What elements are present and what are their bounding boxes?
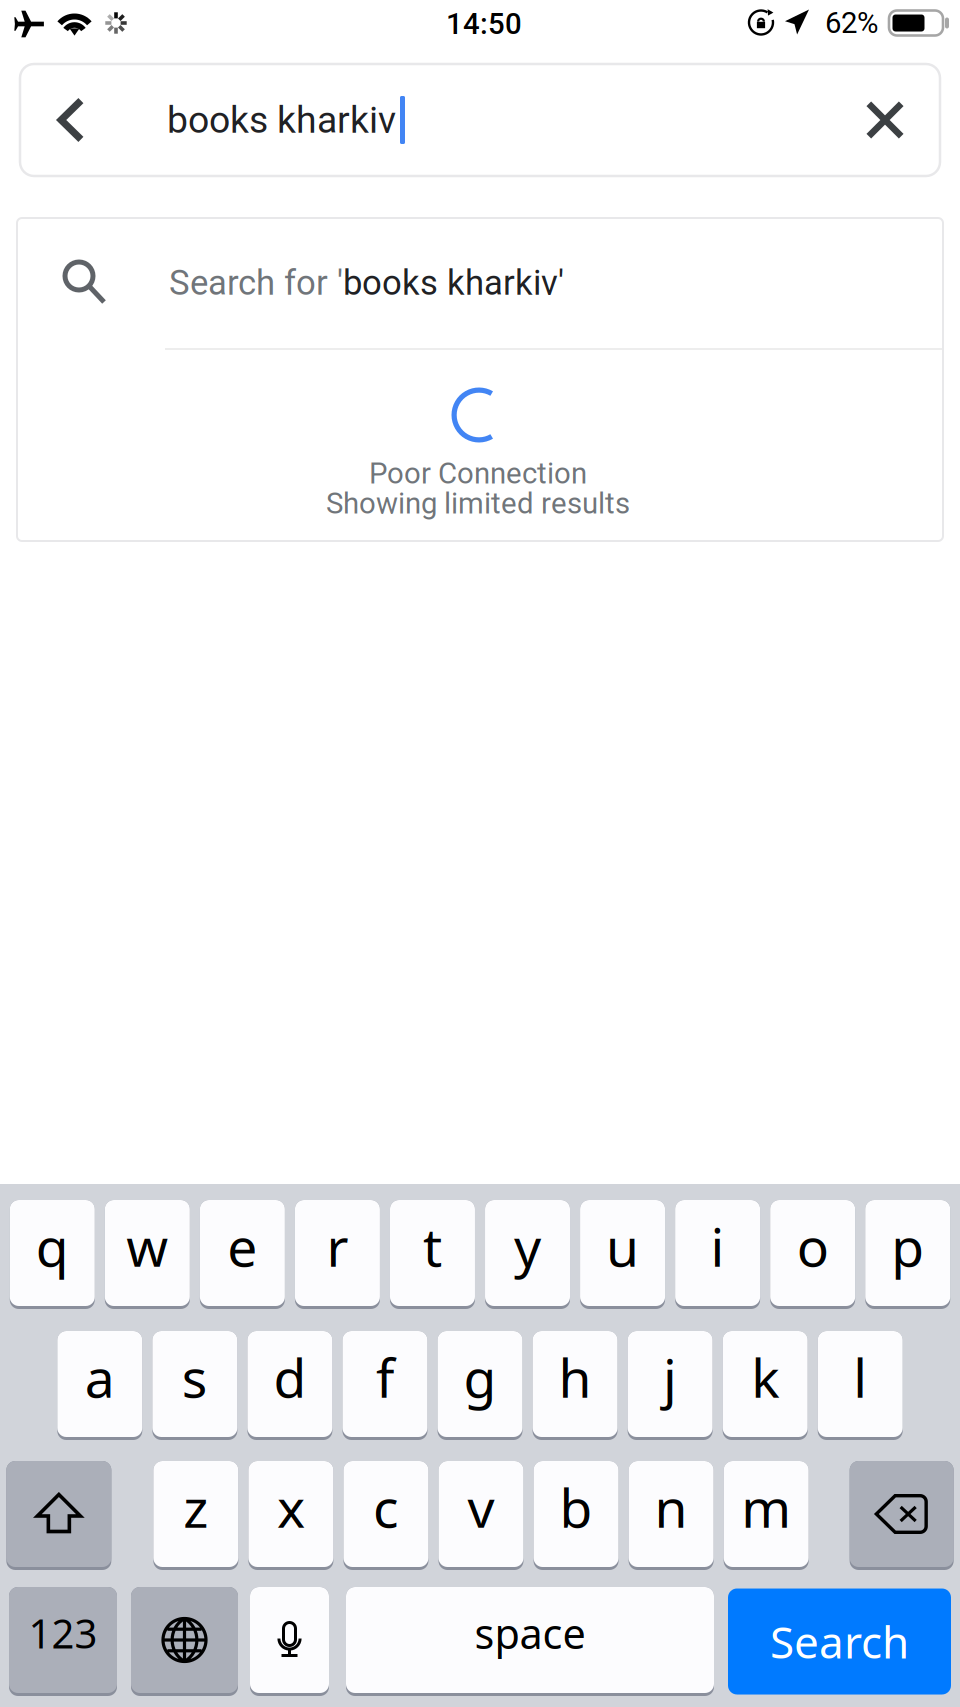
staticText: books kharkiv'	[343, 263, 564, 303]
staticText: d	[273, 1342, 306, 1412]
button[interactable]: f	[342, 1331, 427, 1440]
staticText: h	[558, 1342, 591, 1412]
button[interactable]: d	[247, 1331, 332, 1440]
button[interactable]: Clear	[831, 64, 939, 176]
button[interactable]: i	[675, 1200, 760, 1309]
button[interactable]: r	[295, 1200, 380, 1309]
staticText: r	[326, 1211, 348, 1281]
button[interactable]: z	[153, 1461, 238, 1570]
button[interactable]: s	[152, 1331, 237, 1440]
staticText: 62%	[825, 6, 878, 40]
staticText: w	[126, 1211, 168, 1281]
button[interactable]: e	[200, 1200, 285, 1309]
staticText: p	[891, 1211, 924, 1281]
staticText: space	[474, 1606, 585, 1660]
staticText: books kharkiv	[167, 98, 396, 142]
staticText: x	[277, 1472, 305, 1542]
button[interactable]: space	[346, 1587, 714, 1696]
button[interactable]: Back	[21, 64, 121, 176]
button[interactable]: Search for '	[17, 218, 943, 348]
button[interactable]: y	[485, 1200, 570, 1309]
staticText: k	[751, 1342, 779, 1412]
button[interactable]: m	[724, 1461, 809, 1570]
staticText: 123	[28, 1606, 97, 1659]
staticText: l	[853, 1342, 867, 1412]
staticText: s	[182, 1342, 208, 1412]
button[interactable]: o	[770, 1200, 855, 1309]
staticText: i	[711, 1211, 725, 1281]
button[interactable]: Next keyboard	[131, 1587, 238, 1696]
button[interactable]: 123	[9, 1587, 117, 1696]
button[interactable]: Delete	[850, 1461, 954, 1570]
staticText: o	[797, 1211, 829, 1281]
staticText: Poor Connection	[369, 456, 587, 491]
staticText: m	[741, 1472, 791, 1542]
button[interactable]: v	[438, 1461, 523, 1570]
button[interactable]: q	[10, 1200, 95, 1309]
button[interactable]: j	[628, 1331, 713, 1440]
button[interactable]: c	[343, 1461, 428, 1570]
button[interactable]: a	[57, 1331, 142, 1440]
staticText: j	[663, 1342, 677, 1412]
button[interactable]: t	[390, 1200, 475, 1309]
staticText: 14:50	[446, 7, 522, 41]
button[interactable]: w	[105, 1200, 190, 1309]
staticText: u	[606, 1211, 639, 1281]
button[interactable]: k	[723, 1331, 808, 1440]
staticText: y	[514, 1211, 541, 1281]
staticText: b	[559, 1472, 592, 1542]
staticText: q	[36, 1211, 69, 1281]
button[interactable]: n	[629, 1461, 714, 1570]
staticText: a	[85, 1342, 115, 1412]
button[interactable]: b	[533, 1461, 618, 1570]
button[interactable]: l	[818, 1331, 903, 1440]
button[interactable]: Shift	[6, 1461, 111, 1570]
staticText: f	[376, 1342, 394, 1412]
staticText: Showing limited results	[326, 486, 630, 521]
button[interactable]: Search	[728, 1588, 951, 1694]
button[interactable]: x	[248, 1461, 333, 1570]
button[interactable]: Dictate	[250, 1587, 329, 1696]
staticText: v	[467, 1472, 494, 1542]
staticText: e	[227, 1211, 257, 1281]
button[interactable]: u	[580, 1200, 665, 1309]
button[interactable]: g	[437, 1331, 522, 1440]
staticText: Search for '	[169, 263, 343, 303]
staticText: t	[423, 1211, 442, 1281]
staticText: z	[183, 1472, 208, 1542]
button[interactable]: p	[865, 1200, 950, 1309]
staticText: g	[463, 1342, 496, 1412]
staticText: c	[373, 1472, 399, 1542]
staticText: n	[655, 1472, 688, 1542]
staticText: Search	[770, 1612, 909, 1671]
button[interactable]: h	[532, 1331, 617, 1440]
